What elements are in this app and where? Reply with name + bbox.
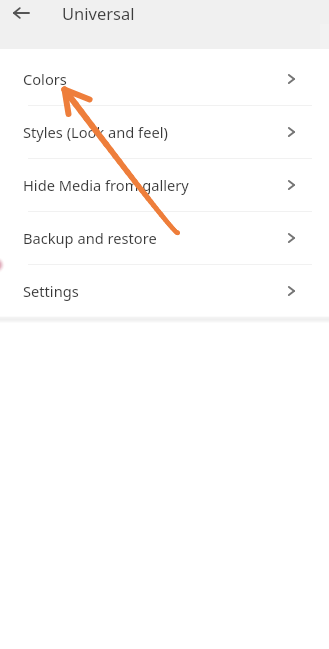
staticText: Settings [23, 281, 79, 301]
staticText: Colors [23, 69, 67, 89]
button[interactable]: Styles (Look and feel) [0, 106, 329, 158]
button[interactable]: Hide Media from gallery [0, 159, 329, 211]
staticText: Backup and restore [23, 228, 157, 248]
staticText: Hide Media from gallery [23, 175, 189, 195]
button[interactable]: Colors [0, 53, 329, 105]
staticText: Universal [62, 2, 135, 24]
button[interactable]: Backup and restore [0, 212, 329, 264]
staticText: Styles (Look and feel) [23, 122, 168, 142]
button[interactable]: Back [8, 0, 34, 26]
button[interactable]: Settings [0, 265, 329, 316]
